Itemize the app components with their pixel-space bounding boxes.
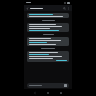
button[interactable] [27,23,69,32]
button[interactable]: Back [26,7,29,10]
button[interactable]: Send [27,83,69,88]
button[interactable]: More options [67,7,70,10]
button[interactable] [27,37,69,46]
button[interactable] [27,13,69,18]
button[interactable] [27,51,69,62]
button[interactable]: Recents [59,91,63,95]
button[interactable]: Home [46,91,50,95]
button[interactable]: Back [33,91,37,95]
other: Send [64,84,67,87]
button[interactable]: Search [63,7,66,10]
